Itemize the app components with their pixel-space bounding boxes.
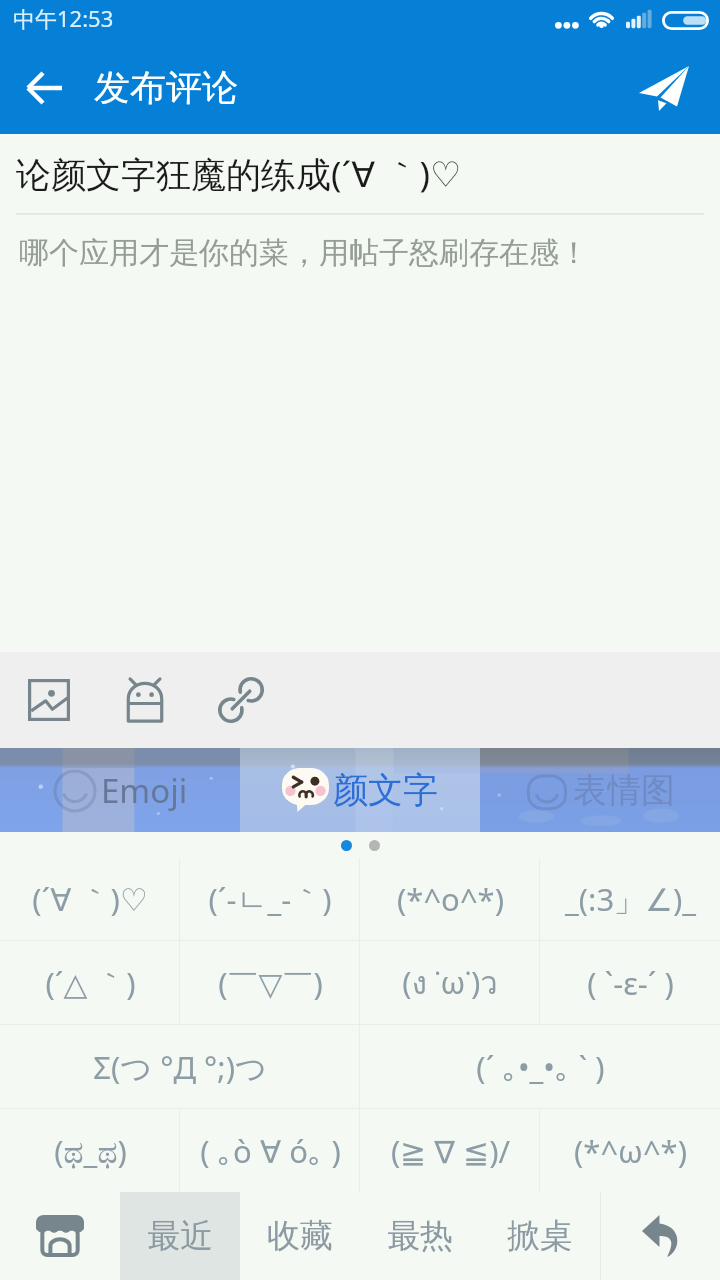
staticText: ( ˋ-ε-ˊ ): [587, 962, 674, 1004]
button[interactable]: (*^o^*): [360, 858, 540, 940]
button[interactable]: Insert sticker: [110, 665, 180, 735]
button[interactable]: Σ(つ °Д °;)つ: [0, 1025, 360, 1108]
button[interactable]: 掀桌: [480, 1192, 600, 1280]
button[interactable]: (´∀ ｀)♡: [0, 858, 180, 940]
staticText: 最热: [387, 1215, 453, 1257]
staticText: (´ ｡•_•｡ ` ): [476, 1046, 605, 1088]
staticText: Σ(つ °Д °;)つ: [93, 1046, 267, 1088]
button[interactable]: Backspace: [601, 1192, 720, 1280]
button[interactable]: Back: [8, 55, 82, 129]
button[interactable]: (´ ｡•_•｡ ` ): [360, 1025, 720, 1108]
button[interactable]: Insert link: [206, 665, 276, 735]
staticText: (ಥ_ಥ): [54, 1130, 127, 1172]
button[interactable]: (ಥ_ಥ): [0, 1109, 180, 1192]
staticText: 表情图: [573, 769, 675, 812]
staticText: 最近: [147, 1215, 213, 1257]
button[interactable]: _(:3」∠)_: [540, 858, 720, 940]
button[interactable]: Insert image: [14, 665, 84, 735]
staticText: 掀桌: [507, 1215, 573, 1257]
button[interactable]: (*^ω^*): [540, 1109, 720, 1192]
staticText: (≧ ∇ ≦)/: [391, 1130, 510, 1172]
button[interactable]: Emoji: [0, 748, 240, 832]
staticText: (´△ ｀): [45, 962, 136, 1004]
staticText: (*^o^*): [397, 878, 504, 920]
button[interactable]: (￣▽￣): [180, 941, 360, 1024]
staticText: (´-ㄴ_-｀): [208, 878, 332, 920]
staticText: (*^ω^*): [574, 1130, 687, 1172]
button[interactable]: 表情图: [480, 748, 720, 832]
button[interactable]: 最热: [360, 1192, 480, 1280]
staticText: 哪个应用才是你的菜，用帖子怒刷存在感！: [19, 234, 589, 272]
staticText: 收藏: [267, 1215, 333, 1257]
staticText: (´∀ ｀)♡: [32, 878, 148, 920]
button[interactable]: 收藏: [240, 1192, 360, 1280]
button[interactable]: (´-ㄴ_-｀): [180, 858, 360, 940]
button[interactable]: Send: [628, 52, 700, 124]
staticText: _(:3」∠)_: [565, 878, 696, 920]
button[interactable]: 最近: [120, 1192, 240, 1280]
staticText: Emoji: [101, 768, 188, 813]
button[interactable]: ( ˋ-ε-ˊ ): [540, 941, 720, 1024]
button[interactable]: Store: [0, 1192, 120, 1280]
staticText: (ง ˙ω˙)ว: [402, 958, 498, 1007]
staticText: 颜文字: [333, 768, 438, 812]
button[interactable]: 颜文字: [240, 748, 480, 832]
button[interactable]: ( ｡ò ∀ ó｡ ): [180, 1109, 360, 1192]
button[interactable]: (ง ˙ω˙)ว: [360, 941, 540, 1024]
staticText: 中午12:53: [13, 3, 114, 33]
button[interactable]: (≧ ∇ ≦)/: [360, 1109, 540, 1192]
staticText: 发布评论: [94, 65, 238, 110]
button[interactable]: (´△ ｀): [0, 941, 180, 1024]
staticText: 论颜文字狂魔的练成(´∀ ｀)♡: [16, 150, 462, 198]
staticText: (￣▽￣): [218, 962, 323, 1004]
staticText: ( ｡ò ∀ ó｡ ): [200, 1130, 341, 1172]
